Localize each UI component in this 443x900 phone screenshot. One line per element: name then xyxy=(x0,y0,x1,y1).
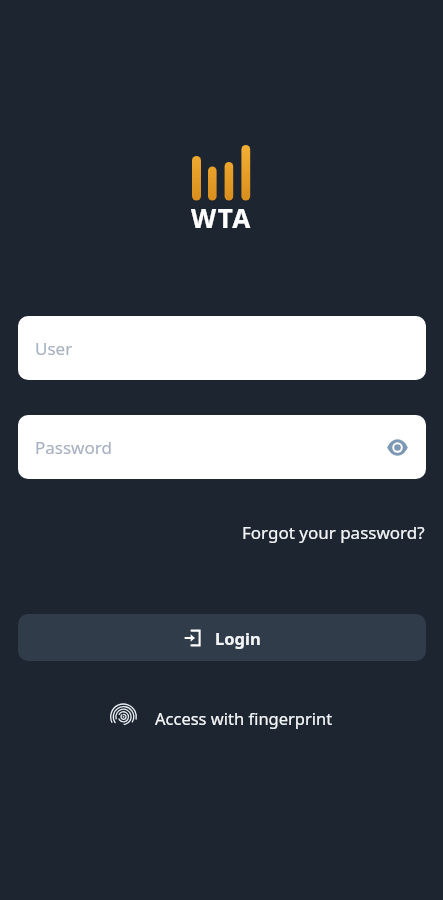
staticText: User xyxy=(35,337,73,360)
staticText: WTA xyxy=(191,200,252,235)
staticText: Access with fingerprint xyxy=(155,707,333,729)
staticText: Login xyxy=(215,627,261,649)
staticText: Password xyxy=(35,436,112,459)
staticText: Forgot your password? xyxy=(242,521,425,544)
